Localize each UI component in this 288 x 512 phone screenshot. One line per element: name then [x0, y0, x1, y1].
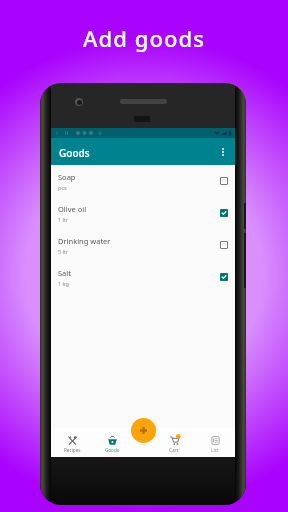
staticText: Olive oil: [58, 204, 87, 214]
staticText: Add goods: [0, 23, 288, 53]
staticText: Salt: [58, 268, 71, 278]
button[interactable]: Soap: [51, 165, 235, 197]
button[interactable]: More options: [214, 143, 231, 160]
button[interactable]: Goods: [95, 428, 129, 457]
staticText: Cart: [169, 447, 179, 453]
staticText: Goods: [59, 146, 90, 160]
button[interactable]: Olive oil: [51, 197, 235, 229]
button[interactable]: List: [198, 428, 232, 457]
button[interactable]: Recipes: [55, 428, 89, 457]
staticText: pcs: [58, 184, 67, 191]
button[interactable]: Drinking water: [51, 229, 235, 261]
staticText: 5 ltr: [58, 248, 69, 255]
button[interactable]: Add: [131, 418, 156, 443]
button[interactable]: Cart: [157, 428, 191, 457]
staticText: 1 ltr: [58, 216, 69, 223]
staticText: Goods: [105, 447, 119, 453]
staticText: Recipes: [64, 447, 81, 453]
staticText: List: [211, 447, 219, 453]
staticText: Soap: [58, 172, 76, 182]
staticText: Drinking water: [58, 236, 111, 246]
button[interactable]: Salt: [51, 261, 235, 293]
staticText: 1 kg: [58, 280, 69, 287]
